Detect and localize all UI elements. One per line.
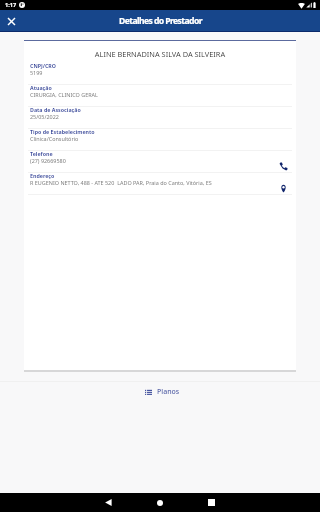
staticText: 1:17 [5, 1, 17, 9]
staticText: Telefone [30, 150, 53, 157]
staticText: 25/05/2022 [30, 113, 59, 120]
staticText: Atuação [30, 84, 52, 91]
staticText: Detalhes do Prestador [119, 15, 202, 27]
staticText: Data de Associação [30, 106, 81, 113]
button[interactable]: Recents [200, 493, 222, 512]
staticText: Endereço [30, 172, 55, 179]
staticText: Tipo de Estabelecimento [30, 128, 95, 135]
button[interactable]: Home [149, 493, 171, 512]
staticText: CIRURGIA, CLINICO GERAL [30, 91, 98, 98]
staticText: R EUGENIO NETTO, 488 - ATE 520 LADO PAR,… [30, 179, 212, 186]
button[interactable]: Call [277, 160, 289, 172]
staticText: 5199 [30, 69, 43, 76]
staticText: Clínica/Consultório [30, 135, 79, 142]
button[interactable]: Open map [277, 182, 289, 194]
button[interactable]: Close [1, 11, 21, 31]
button[interactable]: Planos [139, 384, 186, 400]
staticText: CNPJ/CRO [30, 62, 57, 69]
staticText: (27) 92669580 [30, 157, 66, 164]
staticText: ALINE BERNADINA SILVA DA SILVEIRA [24, 49, 296, 59]
staticText: Planos [157, 387, 180, 397]
button[interactable]: Back [97, 493, 119, 512]
